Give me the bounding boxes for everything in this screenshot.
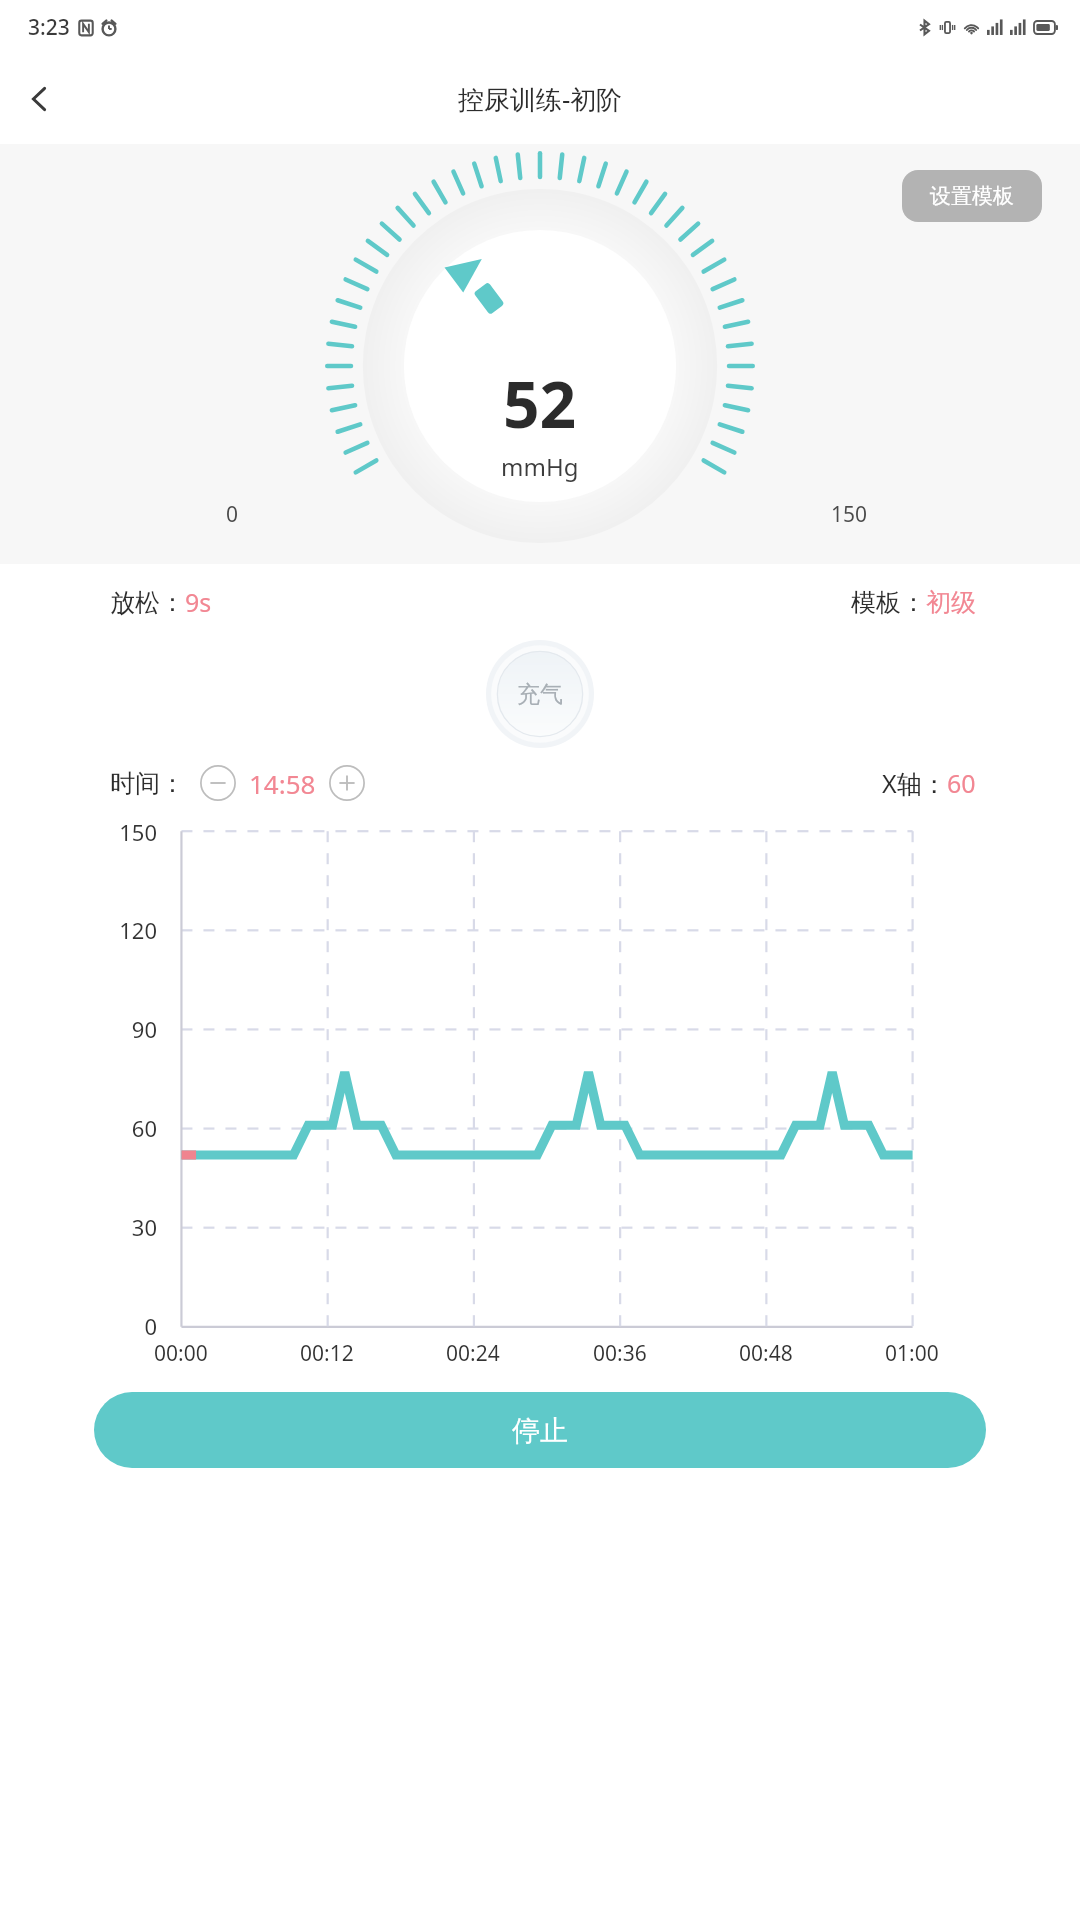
staticText: 120 — [119, 915, 157, 945]
staticText: 00:24 — [446, 1339, 500, 1368]
staticText: 停止 — [512, 1413, 568, 1448]
button[interactable]: Increase time — [328, 764, 366, 802]
staticText: 30 — [131, 1212, 157, 1242]
button[interactable]: 模板： — [540, 587, 1046, 618]
staticText: 控尿训练-初阶 — [458, 81, 623, 117]
staticText: 150 — [119, 817, 157, 847]
staticText: 00:12 — [300, 1339, 354, 1368]
button[interactable]: Decrease time — [199, 764, 237, 802]
staticText: 9s — [185, 585, 212, 619]
button[interactable]: 充气 — [486, 640, 594, 748]
staticText: 放松： — [110, 587, 185, 618]
staticText: 充气 — [517, 680, 563, 709]
staticText: 设置模板 — [930, 183, 1014, 209]
staticText: 00:48 — [739, 1339, 793, 1368]
staticText: 150 — [831, 500, 868, 529]
staticText: X轴： — [882, 766, 947, 800]
staticText: 00:00 — [154, 1339, 208, 1368]
staticText: 初级 — [926, 587, 976, 618]
button[interactable]: 停止 — [94, 1392, 986, 1468]
button[interactable]: Back — [10, 70, 68, 128]
staticText: mmHg — [501, 450, 579, 483]
staticText: 00:36 — [593, 1339, 647, 1368]
staticText: 0 — [144, 1311, 157, 1341]
staticText: 3:23 — [28, 13, 70, 42]
staticText: 14:58 — [249, 766, 316, 801]
staticText: 60 — [131, 1113, 157, 1143]
staticText: 60 — [947, 766, 976, 800]
staticText: 01:00 — [885, 1339, 939, 1368]
button[interactable]: 放松： — [34, 585, 540, 619]
button[interactable]: 设置模板 — [902, 170, 1042, 222]
staticText: 90 — [131, 1014, 157, 1044]
staticText: 时间： — [110, 768, 185, 799]
staticText: 模板： — [851, 587, 926, 618]
staticText: 0 — [226, 500, 239, 529]
staticText: 52 — [503, 360, 577, 447]
